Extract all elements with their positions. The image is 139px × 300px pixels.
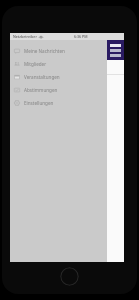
staticText: Abstimmungen	[24, 87, 58, 93]
staticText: Meine Nachrichten	[24, 48, 65, 54]
staticText: Einstellungen	[24, 100, 54, 106]
button[interactable]: Meine Nachrichten	[10, 44, 107, 57]
staticText: Netzbetreiber	[13, 34, 37, 39]
staticText: 6:36 PM	[74, 34, 88, 39]
button[interactable]: Mitglieder	[10, 57, 107, 70]
button[interactable]: Home	[60, 267, 79, 286]
button[interactable]: Abstimmungen	[10, 83, 107, 96]
button[interactable]	[10, 60, 124, 74]
staticText: Mitglieder	[24, 61, 47, 67]
button[interactable]: Veranstaltungen	[10, 70, 107, 83]
staticText: Veranstaltungen	[24, 74, 60, 80]
button[interactable]: Einstellungen	[10, 96, 107, 109]
